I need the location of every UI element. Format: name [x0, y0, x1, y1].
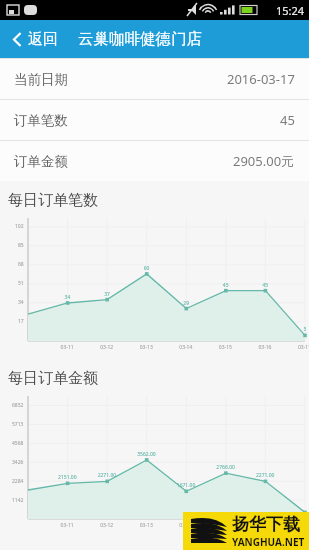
staticText: 订单笔数 — [14, 112, 68, 129]
staticText: 订单金额 — [14, 153, 68, 170]
staticText: YANGHUA.NET — [232, 535, 305, 549]
staticText: 每日订单金额 — [8, 369, 98, 388]
staticText: 返回 — [28, 30, 58, 49]
staticText: 每日订单笔数 — [8, 191, 98, 210]
button[interactable]: 订单笔数 — [0, 100, 309, 140]
button[interactable]: 订单金额 — [0, 141, 309, 181]
staticText: 扬华下载 — [232, 514, 300, 535]
staticText: 云巢咖啡健德门店 — [78, 29, 202, 49]
button[interactable]: 当前日期 — [0, 59, 309, 99]
staticText: 45 — [280, 111, 295, 129]
staticText: 当前日期 — [14, 71, 68, 88]
staticText: 2016-03-17 — [227, 70, 295, 88]
staticText: 15:24 — [276, 3, 305, 18]
staticText: 2905.00元 — [233, 152, 295, 170]
button[interactable]: 返回 — [8, 26, 62, 53]
